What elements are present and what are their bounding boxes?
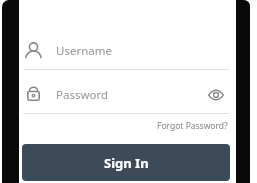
button[interactable]: Password xyxy=(19,76,235,113)
staticText: Username xyxy=(56,43,112,59)
staticText: Forgot Password? xyxy=(157,120,228,132)
staticText: Sign In xyxy=(104,154,149,172)
button[interactable]: Sign In xyxy=(22,144,230,181)
button[interactable]: Forgot Password? xyxy=(150,118,235,134)
button[interactable]: Username xyxy=(19,32,235,69)
button[interactable]: Show password xyxy=(206,85,226,105)
staticText: Password xyxy=(56,87,109,103)
